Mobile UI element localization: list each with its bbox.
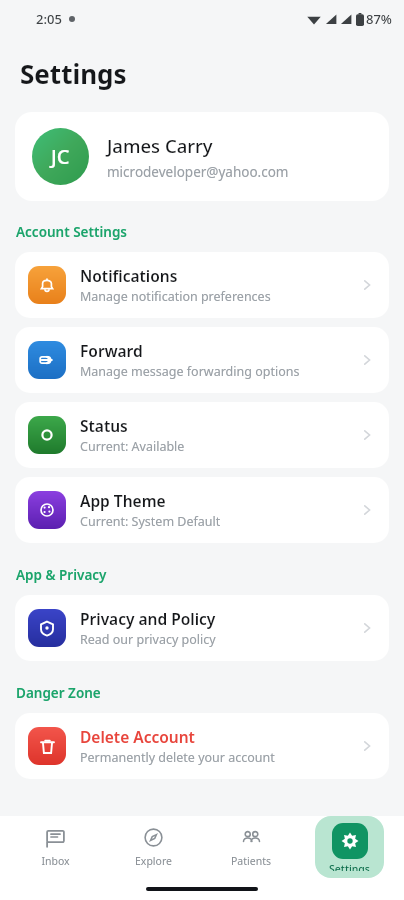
staticText: Notifications	[80, 265, 178, 286]
button[interactable]: Patients	[221, 821, 281, 874]
staticText: Patients	[231, 854, 271, 868]
staticText: App & Privacy	[16, 566, 107, 584]
staticText: Danger Zone	[16, 684, 101, 702]
button[interactable]: Notifications	[15, 252, 389, 318]
staticText: Status	[80, 415, 128, 436]
button[interactable]: JC	[15, 112, 389, 201]
staticText: Settings	[329, 862, 370, 871]
staticText: 87%	[366, 10, 392, 28]
staticText: Manage notification preferences	[80, 288, 271, 305]
staticText: JC	[51, 143, 70, 170]
staticText: Permanently delete your account	[80, 749, 275, 766]
button[interactable]: Forward	[15, 327, 389, 393]
button[interactable]: Delete Account	[15, 713, 389, 779]
staticText: Explore	[135, 854, 172, 868]
staticText: Delete Account	[80, 726, 195, 747]
button[interactable]: App Theme	[15, 477, 389, 543]
button[interactable]: Privacy and Policy	[15, 595, 389, 661]
staticText: App Theme	[80, 490, 166, 511]
staticText: Manage message forwarding options	[80, 363, 300, 380]
staticText: Forward	[80, 340, 143, 361]
button[interactable]: Settings	[315, 816, 384, 878]
staticText: Settings	[20, 56, 127, 91]
staticText: microdeveloper@yahoo.com	[107, 163, 289, 181]
staticText: Inbox	[41, 854, 70, 868]
staticText: Read our privacy policy	[80, 631, 216, 648]
button[interactable]: Inbox	[31, 821, 80, 874]
staticText: Current: System Default	[80, 513, 221, 530]
staticText: Current: Available	[80, 438, 185, 455]
staticText: James Carry	[107, 133, 213, 158]
staticText: 2:05	[36, 10, 62, 28]
button[interactable]: Explore	[125, 821, 182, 874]
staticText: Account Settings	[16, 223, 127, 241]
staticText: Privacy and Policy	[80, 608, 216, 629]
button[interactable]: Status	[15, 402, 389, 468]
